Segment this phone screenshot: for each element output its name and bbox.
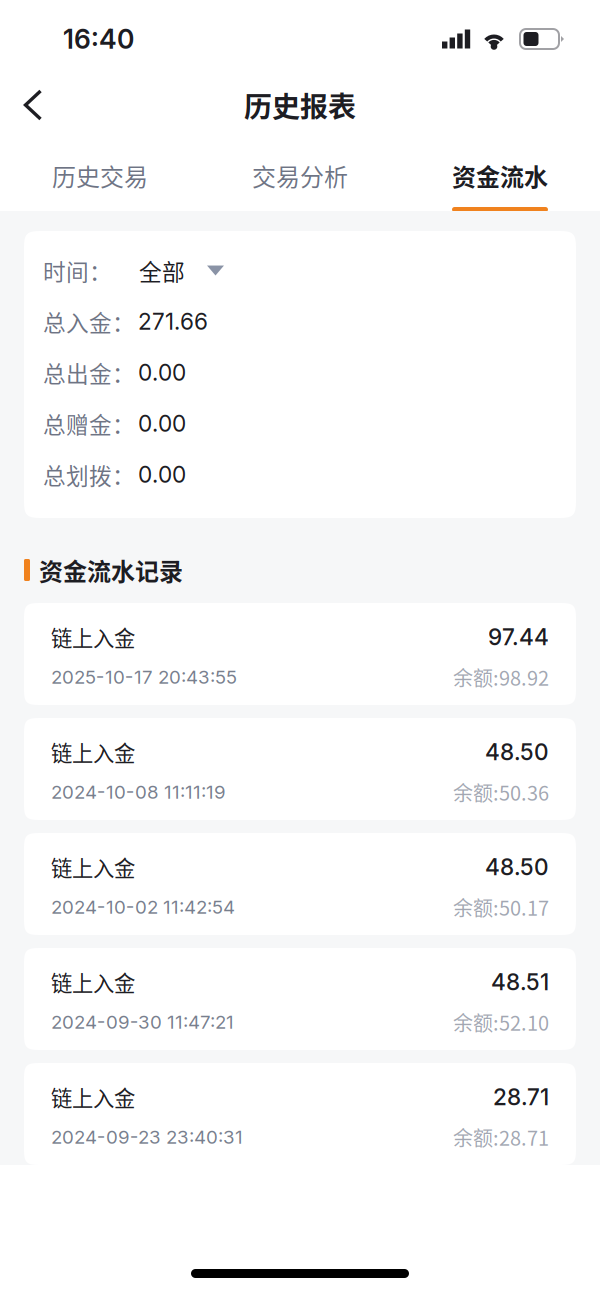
button[interactable]: 链上入金 <box>24 1063 576 1165</box>
staticText: 2025-10-17 20:43:55 <box>51 666 237 688</box>
staticText: 链上入金 <box>51 737 135 767</box>
staticText: 97.44 <box>488 623 549 651</box>
staticText: 16:40 <box>63 23 134 55</box>
staticText: 链上入金 <box>51 967 135 997</box>
staticText: 历史交易 <box>52 158 148 193</box>
staticText: 余额:28.71 <box>453 1122 549 1151</box>
staticText: 交易分析 <box>252 158 348 193</box>
staticText: 48.51 <box>491 968 549 996</box>
button[interactable]: 交易分析 <box>200 132 400 211</box>
staticText: 资金流水 <box>452 158 548 193</box>
staticText: 总入金： <box>43 305 135 338</box>
staticText: 总划拨： <box>43 458 135 491</box>
button[interactable]: 返回 <box>0 77 66 132</box>
staticText: 0.00 <box>138 359 186 386</box>
button[interactable]: 链上入金 <box>24 718 576 820</box>
staticText: 2024-10-08 11:11:19 <box>51 781 226 803</box>
staticText: 271.66 <box>138 308 208 335</box>
staticText: 48.50 <box>485 853 549 881</box>
staticText: 余额:50.36 <box>453 777 549 806</box>
staticText: 0.00 <box>138 461 186 488</box>
staticText: 余额:52.10 <box>453 1007 549 1036</box>
staticText: 48.50 <box>485 738 549 766</box>
staticText: 总赠金： <box>43 407 135 440</box>
staticText: 2024-09-30 11:47:21 <box>51 1011 234 1033</box>
staticText: 2024-10-02 11:42:54 <box>51 896 235 918</box>
staticText: 余额:98.92 <box>453 662 549 691</box>
button[interactable]: 时间： <box>43 245 556 296</box>
staticText: 时间： <box>43 254 112 287</box>
button[interactable]: 链上入金 <box>24 948 576 1050</box>
staticText: 总出金： <box>43 356 135 389</box>
button[interactable]: 链上入金 <box>24 833 576 935</box>
staticText: 余额:50.17 <box>453 892 549 921</box>
staticText: 2024-09-23 23:40:31 <box>51 1126 243 1148</box>
staticText: 0.00 <box>138 410 186 437</box>
staticText: 链上入金 <box>51 852 135 882</box>
button[interactable]: 链上入金 <box>24 603 576 705</box>
staticText: 全部 <box>139 254 185 287</box>
staticText: 历史报表 <box>244 85 356 125</box>
staticText: 资金流水记录 <box>39 553 183 587</box>
button[interactable]: 资金流水 <box>400 132 600 211</box>
staticText: 链上入金 <box>51 1082 135 1112</box>
staticText: 链上入金 <box>51 622 135 652</box>
button[interactable]: 历史交易 <box>0 132 200 211</box>
staticText: 28.71 <box>493 1083 549 1111</box>
